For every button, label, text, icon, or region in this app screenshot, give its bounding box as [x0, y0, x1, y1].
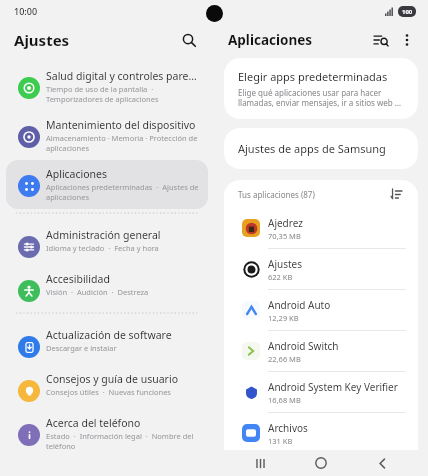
staticText: Aplicaciones: [46, 167, 108, 181]
staticText: Consejos útiles · Nuevas funciones: [46, 387, 171, 397]
staticText: Android Switch: [268, 339, 339, 353]
staticText: Descargar e instalar: [46, 343, 117, 353]
button[interactable]: Salud digital y controles parentales: [6, 62, 208, 111]
button[interactable]: Buscar aplicaciones: [368, 27, 394, 53]
staticText: 16,68 MB: [268, 395, 301, 405]
staticText: 131 KB: [268, 436, 293, 446]
button[interactable]: Accesibilidad: [6, 265, 208, 309]
staticText: Visión · Audición · Destreza: [46, 287, 149, 297]
staticText: Ajedrez: [268, 216, 303, 230]
staticText: Idioma y teclado · Fecha y hora: [46, 243, 159, 253]
staticText: Ajustes: [14, 30, 176, 50]
staticText: 12,29 KB: [268, 313, 299, 323]
button[interactable]: Recientes: [245, 450, 275, 476]
button[interactable]: Archivos: [224, 413, 418, 454]
button[interactable]: Mantenimiento del dispositivo: [6, 111, 208, 160]
staticText: Aplicaciones: [228, 31, 368, 49]
staticText: Mantenimiento del dispositivo: [46, 118, 196, 132]
staticText: Archivos: [268, 421, 308, 435]
staticText: Aplicaciones predeterminadas · Ajustes d…: [46, 182, 200, 202]
staticText: Estado · Información legal · Nombre del …: [46, 431, 200, 451]
button[interactable]: Buscar: [176, 27, 202, 53]
staticText: Actualización de software: [46, 328, 172, 342]
staticText: Salud digital y controles parentales: [46, 69, 200, 83]
button[interactable]: Administración general: [6, 221, 208, 265]
button[interactable]: Aplicaciones: [6, 160, 208, 209]
staticText: Elegir apps predeterminadas: [238, 69, 388, 84]
button[interactable]: Ajustes: [224, 249, 418, 290]
staticText: 10:00: [14, 5, 38, 17]
staticText: Tus aplicaciones (87): [238, 189, 315, 200]
staticText: Almacenamiento · Memoria · Protección de…: [46, 133, 200, 153]
button[interactable]: Android System Key Verifier: [224, 372, 418, 413]
staticText: Android System Key Verifier: [268, 380, 398, 394]
staticText: 100: [402, 8, 413, 16]
button[interactable]: Consejos y guía de usuario: [6, 365, 208, 409]
staticText: Ajustes de Galaxy: [268, 454, 351, 468]
staticText: Elige qué aplicaciones usar para hacer l…: [238, 87, 404, 108]
staticText: Consejos y guía de usuario: [46, 372, 179, 386]
button[interactable]: Android Switch: [224, 331, 418, 372]
button[interactable]: Android Auto: [224, 290, 418, 331]
staticText: Accesibilidad: [46, 272, 110, 286]
staticText: Acerca del teléfono: [46, 416, 141, 430]
staticText: 622 KB: [268, 272, 293, 282]
button[interactable]: Actualización de software: [6, 321, 208, 365]
staticText: Android Auto: [268, 298, 331, 312]
staticText: 70,35 MB: [268, 231, 301, 241]
button[interactable]: Elegir apps predeterminadas: [224, 58, 418, 119]
button[interactable]: Ajedrez: [224, 208, 418, 249]
button[interactable]: Ordenar: [386, 184, 406, 204]
staticText: Tiempo de uso de la pantalla · Temporiza…: [46, 84, 200, 104]
staticText: Ajustes: [268, 257, 302, 271]
staticText: Ajustes de apps de Samsung: [238, 141, 386, 156]
staticText: 22,66 MB: [268, 354, 301, 364]
button[interactable]: Acerca del teléfono: [6, 409, 208, 458]
button[interactable]: Atrás: [367, 450, 397, 476]
button[interactable]: Ajustes de apps de Samsung: [224, 128, 418, 169]
staticText: Administración general: [46, 228, 161, 242]
button[interactable]: Inicio: [306, 450, 336, 476]
button[interactable]: Más opciones: [394, 27, 420, 53]
